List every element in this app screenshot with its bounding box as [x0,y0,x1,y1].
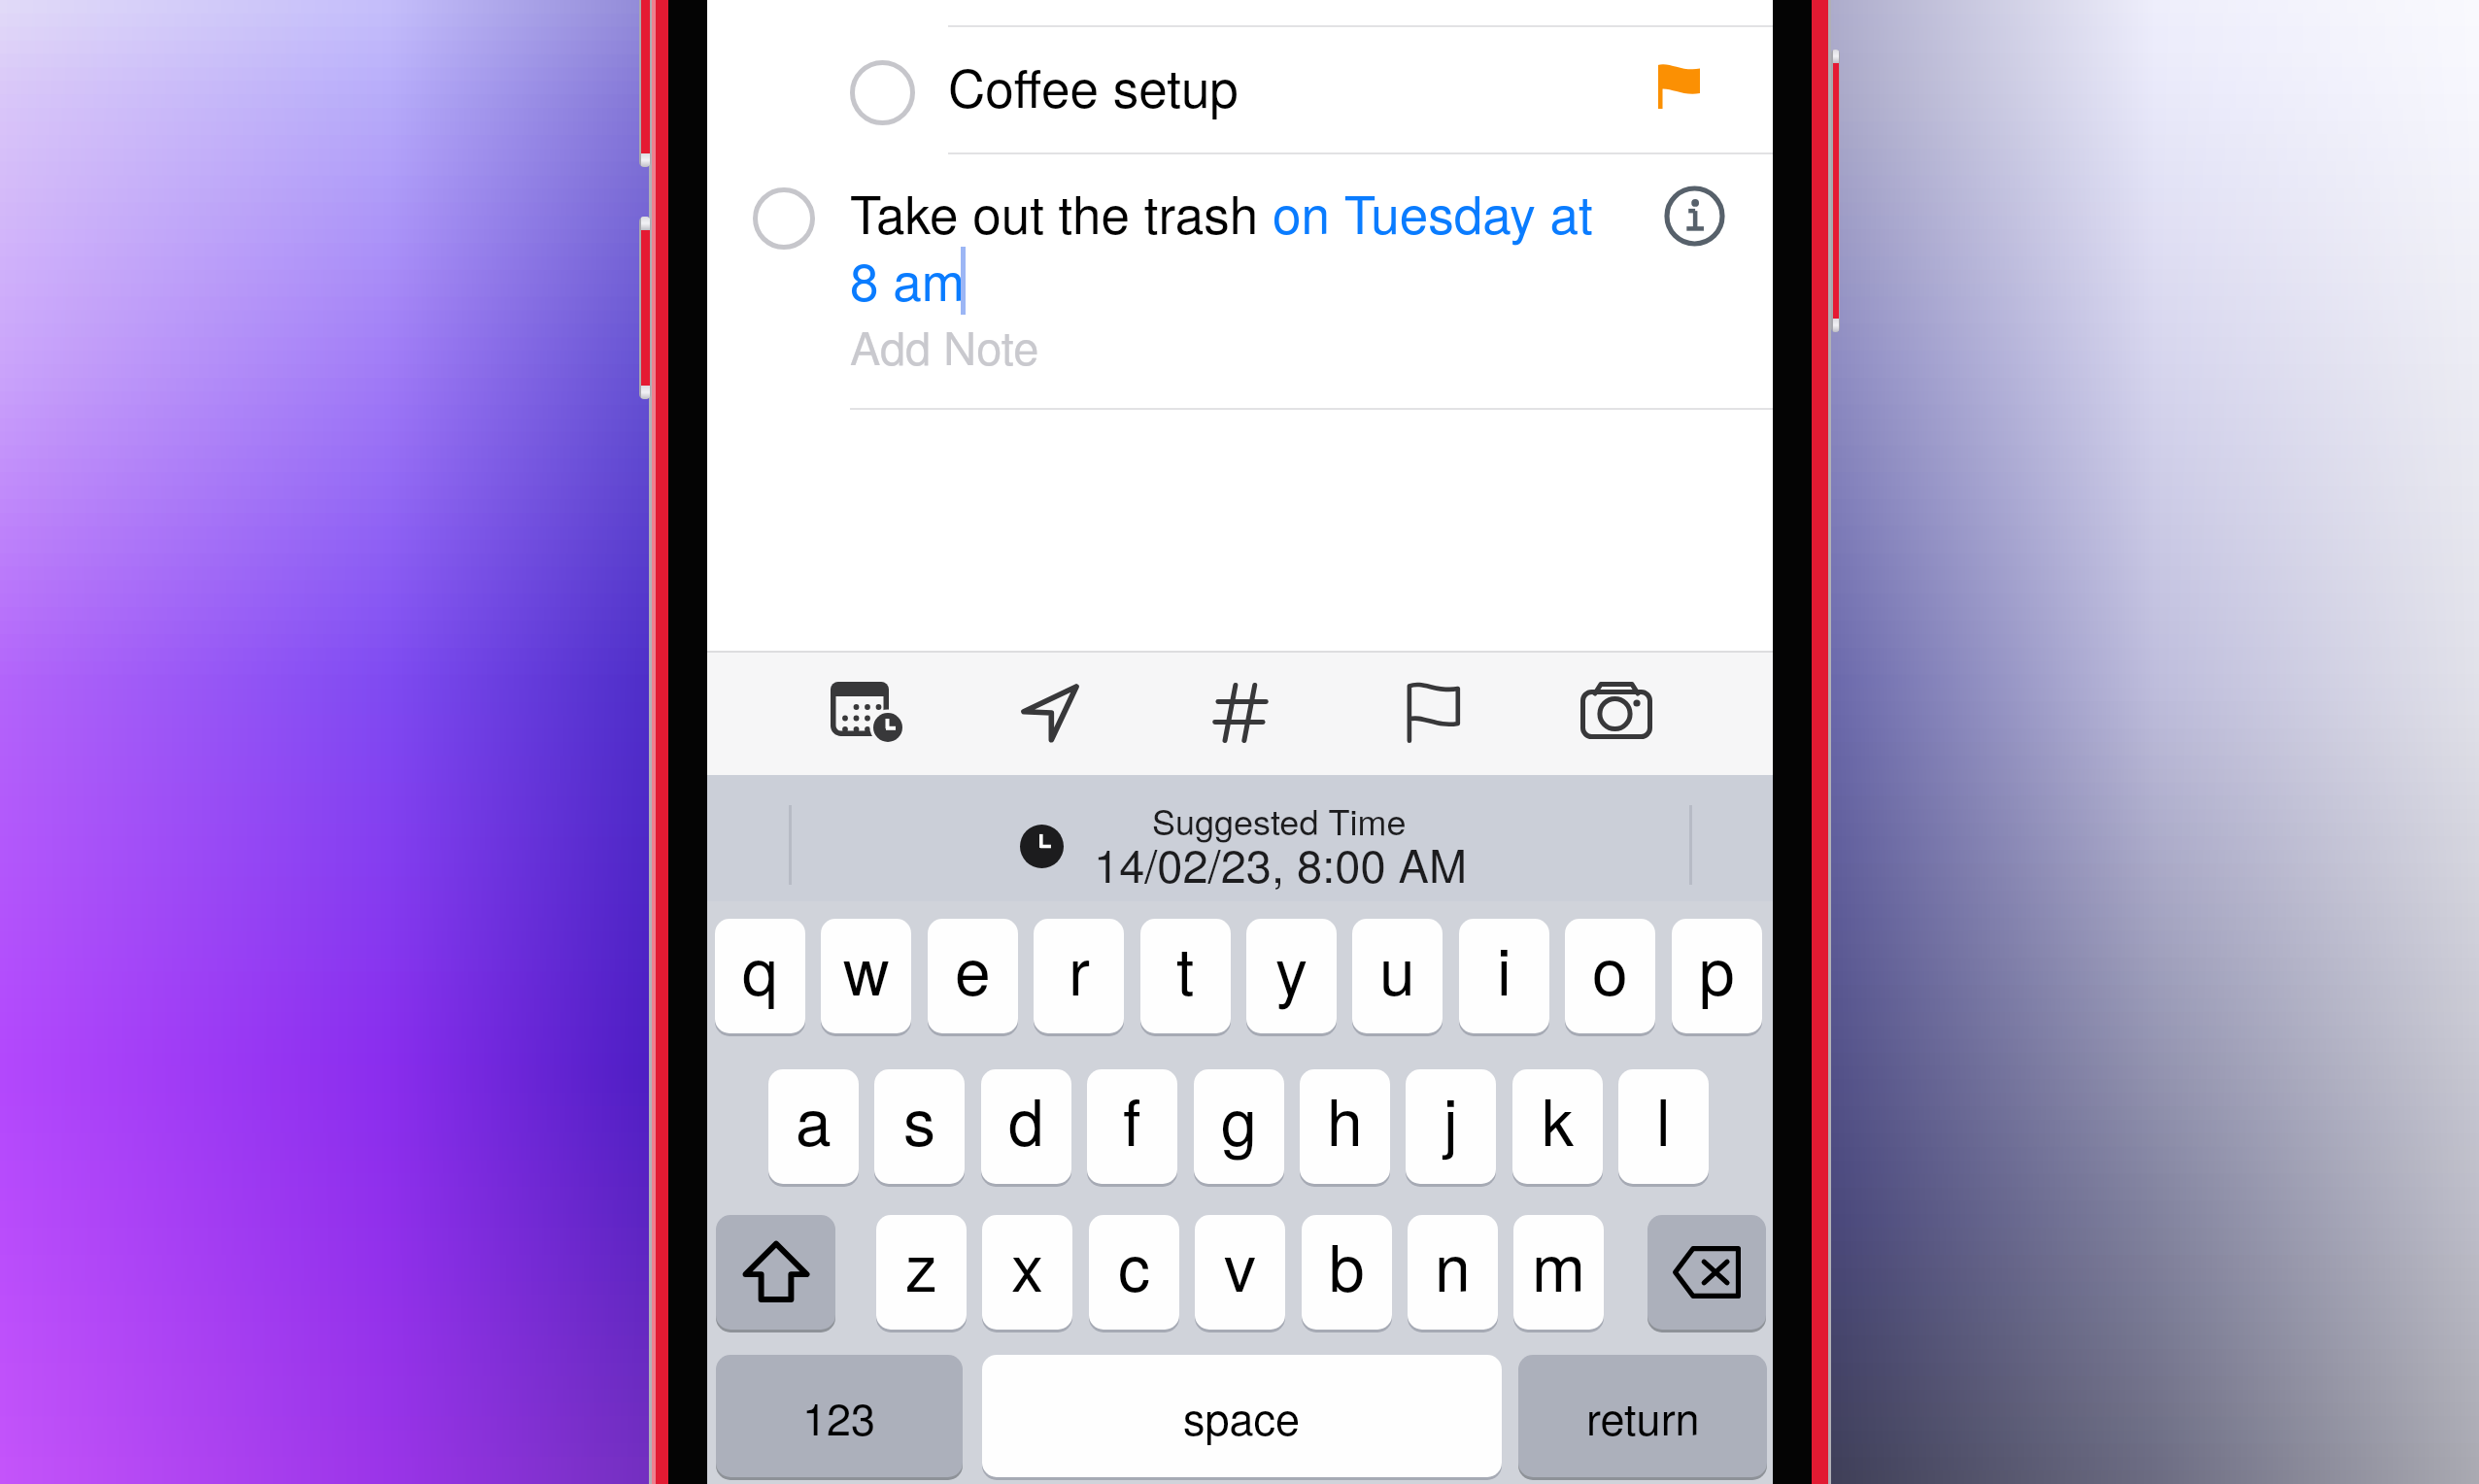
button[interactable]: t [1140,919,1231,1033]
button[interactable]: space [982,1355,1502,1477]
button[interactable]: n [1408,1215,1498,1330]
button[interactable]: m [1513,1215,1604,1330]
staticText: m [1532,1218,1585,1310]
staticText: d [1008,1072,1044,1164]
button[interactable]: h [1300,1069,1390,1184]
staticText: g [1221,1072,1257,1164]
staticText: e [955,922,991,1014]
button[interactable]: return [1518,1355,1767,1477]
staticText: v [1224,1218,1256,1310]
button[interactable]: p [1672,919,1762,1033]
staticText: j [1443,1072,1458,1164]
button[interactable]: Mark Take out the trash complete [753,187,815,250]
button[interactable]: Flag [1376,659,1483,766]
staticText: x [1011,1218,1043,1310]
button[interactable]: j [1406,1069,1496,1184]
button[interactable]: Location [997,659,1104,766]
button[interactable]: z [876,1215,967,1330]
button[interactable]: Camera [1563,659,1670,766]
button[interactable]: Backspace [1647,1215,1766,1330]
staticText: p [1699,922,1735,1014]
staticText: h [1327,1072,1363,1164]
staticText: n [1435,1218,1471,1310]
staticText: o [1592,922,1628,1014]
staticText: 14/02/23, 8:00 AM [1094,830,1468,895]
button[interactable]: v [1195,1215,1285,1330]
staticText: i [1497,922,1511,1014]
button[interactable]: Mark Coffee setup complete [850,60,915,125]
button[interactable]: d [981,1069,1071,1184]
button[interactable]: r [1034,919,1124,1033]
staticText: Add Note [850,313,1039,378]
button[interactable]: Flag [1638,46,1719,127]
staticText: Suggested Time [1152,795,1407,846]
staticText: k [1542,1072,1574,1164]
staticText: a [796,1072,832,1164]
staticText: Take out the trash on Tuesday at 8 am [850,175,1627,316]
button[interactable]: w [821,919,911,1033]
button[interactable]: q [715,919,805,1033]
staticText: t [1176,922,1195,1014]
staticText: f [1123,1072,1141,1164]
button[interactable]: l [1618,1069,1709,1184]
button[interactable]: a [768,1069,859,1184]
staticText: space [1183,1385,1301,1447]
button[interactable]: y [1246,919,1337,1033]
button[interactable]: b [1302,1215,1392,1330]
button[interactable]: c [1089,1215,1179,1330]
staticText: q [742,922,778,1014]
button[interactable]: Tag [1187,659,1294,766]
button[interactable]: s [874,1069,965,1184]
staticText: return [1586,1385,1700,1447]
button[interactable]: Suggested Time 14/02/23, 8:00 AM [999,775,1484,901]
staticText: u [1379,922,1415,1014]
button[interactable]: k [1512,1069,1603,1184]
button[interactable]: e [928,919,1018,1033]
button[interactable]: Mark Coffee setup complete [707,27,1773,153]
button[interactable]: Date and time [814,659,921,766]
button[interactable]: Shift [716,1215,835,1330]
staticText: c [1118,1218,1150,1310]
button[interactable]: x [982,1215,1072,1330]
staticText: y [1275,922,1307,1014]
button[interactable]: Take out the trash on Tuesday at 8 am [850,175,1627,388]
staticText: l [1656,1072,1671,1164]
staticText: r [1069,922,1090,1014]
staticText: 123 [802,1385,876,1447]
button[interactable]: Details [1663,185,1725,247]
staticText: z [905,1218,937,1310]
button[interactable]: u [1352,919,1443,1033]
button[interactable]: g [1194,1069,1284,1184]
staticText: Coffee setup [948,49,1239,122]
staticText: s [903,1072,935,1164]
button[interactable]: 123 [716,1355,963,1477]
button[interactable]: o [1565,919,1655,1033]
staticText: w [843,922,890,1014]
button[interactable]: f [1087,1069,1177,1184]
button[interactable]: i [1459,919,1549,1033]
staticText: b [1329,1218,1365,1310]
